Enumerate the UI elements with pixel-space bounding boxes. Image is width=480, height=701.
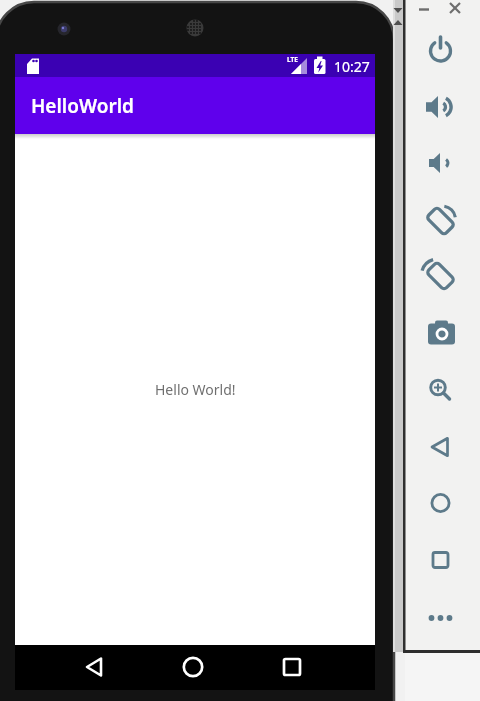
button[interactable]	[420, 142, 462, 184]
button[interactable]	[420, 426, 462, 468]
button[interactable]	[420, 597, 462, 639]
button[interactable]	[420, 539, 462, 581]
staticText: HelloWorld	[31, 93, 134, 119]
staticText: LTE	[287, 55, 298, 64]
button[interactable]	[420, 198, 462, 240]
button[interactable]	[420, 86, 462, 128]
button[interactable]	[420, 254, 462, 296]
button[interactable]	[448, 1, 463, 16]
button[interactable]	[420, 369, 462, 411]
button[interactable]	[420, 310, 462, 352]
button[interactable]	[173, 647, 213, 687]
button[interactable]	[417, 2, 432, 17]
button[interactable]	[74, 647, 114, 687]
button[interactable]	[272, 647, 312, 687]
staticText: 10:27	[334, 57, 370, 76]
staticText: Hello World!	[155, 380, 236, 399]
button[interactable]	[420, 482, 462, 524]
button[interactable]	[420, 29, 462, 71]
